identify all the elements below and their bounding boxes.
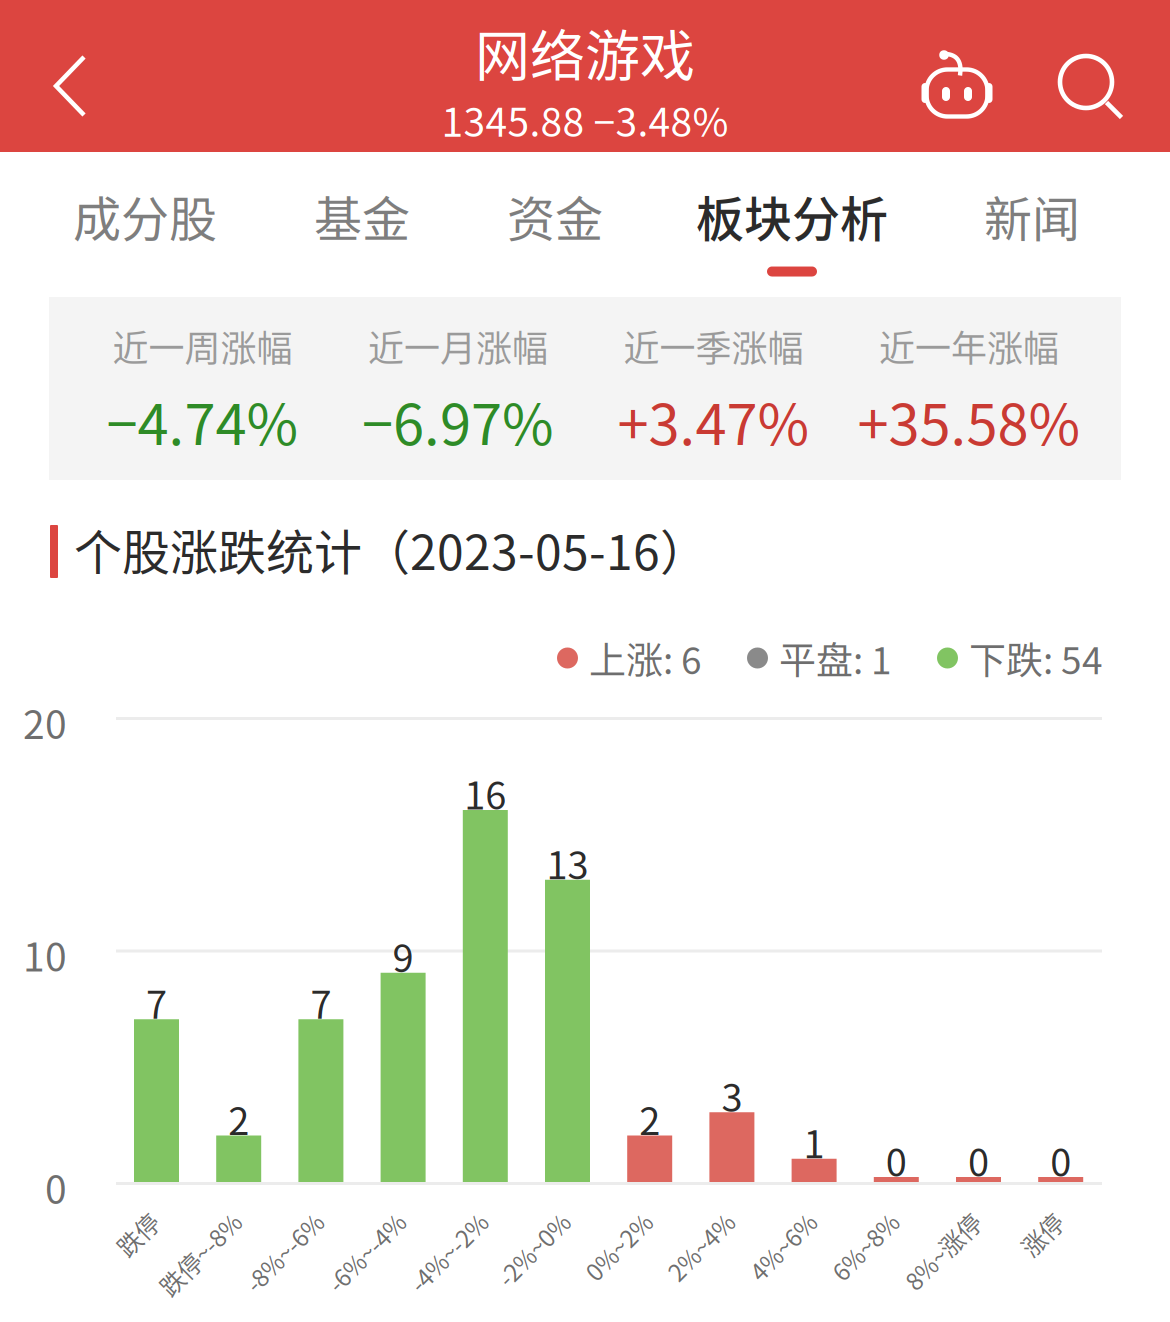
button[interactable]: 搜索	[1031, 11, 1151, 163]
staticText: 6%~8%	[797, 1206, 880, 1240]
staticText: 板块分析	[696, 181, 888, 250]
staticText: 0	[968, 1132, 989, 1187]
staticText: 1	[804, 1114, 825, 1169]
button[interactable]: 资金	[415, 152, 695, 297]
staticText: −4.74%	[106, 380, 298, 461]
staticText: 近一周涨幅	[112, 320, 292, 372]
staticText: 7	[146, 975, 167, 1030]
staticText: −6.97%	[362, 380, 554, 461]
staticText: 跌停~-8%	[119, 1206, 223, 1240]
staticText: 13	[546, 835, 588, 890]
staticText: 平盘: 1	[779, 631, 892, 685]
staticText: 成分股	[73, 181, 217, 250]
staticText: 3	[721, 1068, 742, 1123]
staticText: 16	[464, 765, 506, 820]
staticText: 基金	[314, 181, 410, 250]
staticText: 0	[1050, 1132, 1071, 1187]
staticText: 1345.88 −3.48%	[441, 92, 728, 148]
staticText: 网络游戏	[475, 12, 695, 91]
staticText: 7	[310, 975, 331, 1030]
staticText: 10	[23, 926, 67, 983]
staticText: 20	[23, 694, 67, 750]
staticText: 2	[228, 1091, 249, 1146]
staticText: +35.58%	[857, 380, 1080, 461]
button[interactable]: 返回	[0, 10, 141, 162]
staticText: 2	[639, 1091, 660, 1146]
staticText: -6%~-4%	[288, 1206, 387, 1240]
staticText: 8%~涨停	[866, 1206, 962, 1240]
staticText: 4%~6%	[715, 1206, 798, 1240]
staticText: 个股涨跌统计（2023-05-16）	[74, 514, 708, 584]
button[interactable]: 新闻	[892, 152, 1170, 297]
staticText: 近一月涨幅	[368, 320, 548, 372]
staticText: 下跌: 54	[969, 631, 1103, 685]
staticText: -2%~0%	[460, 1206, 551, 1240]
staticText: -4%~-2%	[370, 1206, 469, 1240]
button[interactable]: 板块分析	[652, 152, 932, 297]
staticText: 2%~4%	[633, 1206, 716, 1240]
staticText: 近一年涨幅	[879, 320, 1059, 372]
staticText: 近一季涨幅	[623, 320, 803, 372]
staticText: 涨停	[997, 1206, 1045, 1240]
staticText: 资金	[507, 181, 603, 250]
staticText: 0%~2%	[551, 1206, 634, 1240]
staticText: 跌停	[92, 1206, 140, 1240]
staticText: 上涨: 6	[589, 631, 702, 685]
staticText: 0	[886, 1132, 907, 1187]
staticText: 9	[393, 928, 414, 983]
staticText: -8%~-6%	[206, 1206, 305, 1240]
button[interactable]: 成分股	[5, 152, 285, 297]
button[interactable]: 智能助手	[897, 10, 1017, 162]
staticText: +3.47%	[617, 380, 809, 461]
staticText: 0	[45, 1159, 67, 1215]
staticText: 新闻	[984, 181, 1080, 250]
button[interactable]: 基金	[222, 152, 502, 297]
